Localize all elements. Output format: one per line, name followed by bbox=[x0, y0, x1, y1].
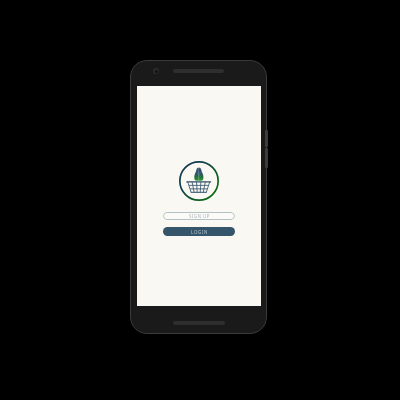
other: Fresh basket logo bbox=[179, 161, 219, 201]
button[interactable]: SIGN UP bbox=[163, 212, 235, 220]
staticText: SIGN UP bbox=[189, 213, 210, 219]
staticText: LOGIN bbox=[191, 229, 208, 235]
button[interactable]: LOGIN bbox=[163, 227, 235, 236]
